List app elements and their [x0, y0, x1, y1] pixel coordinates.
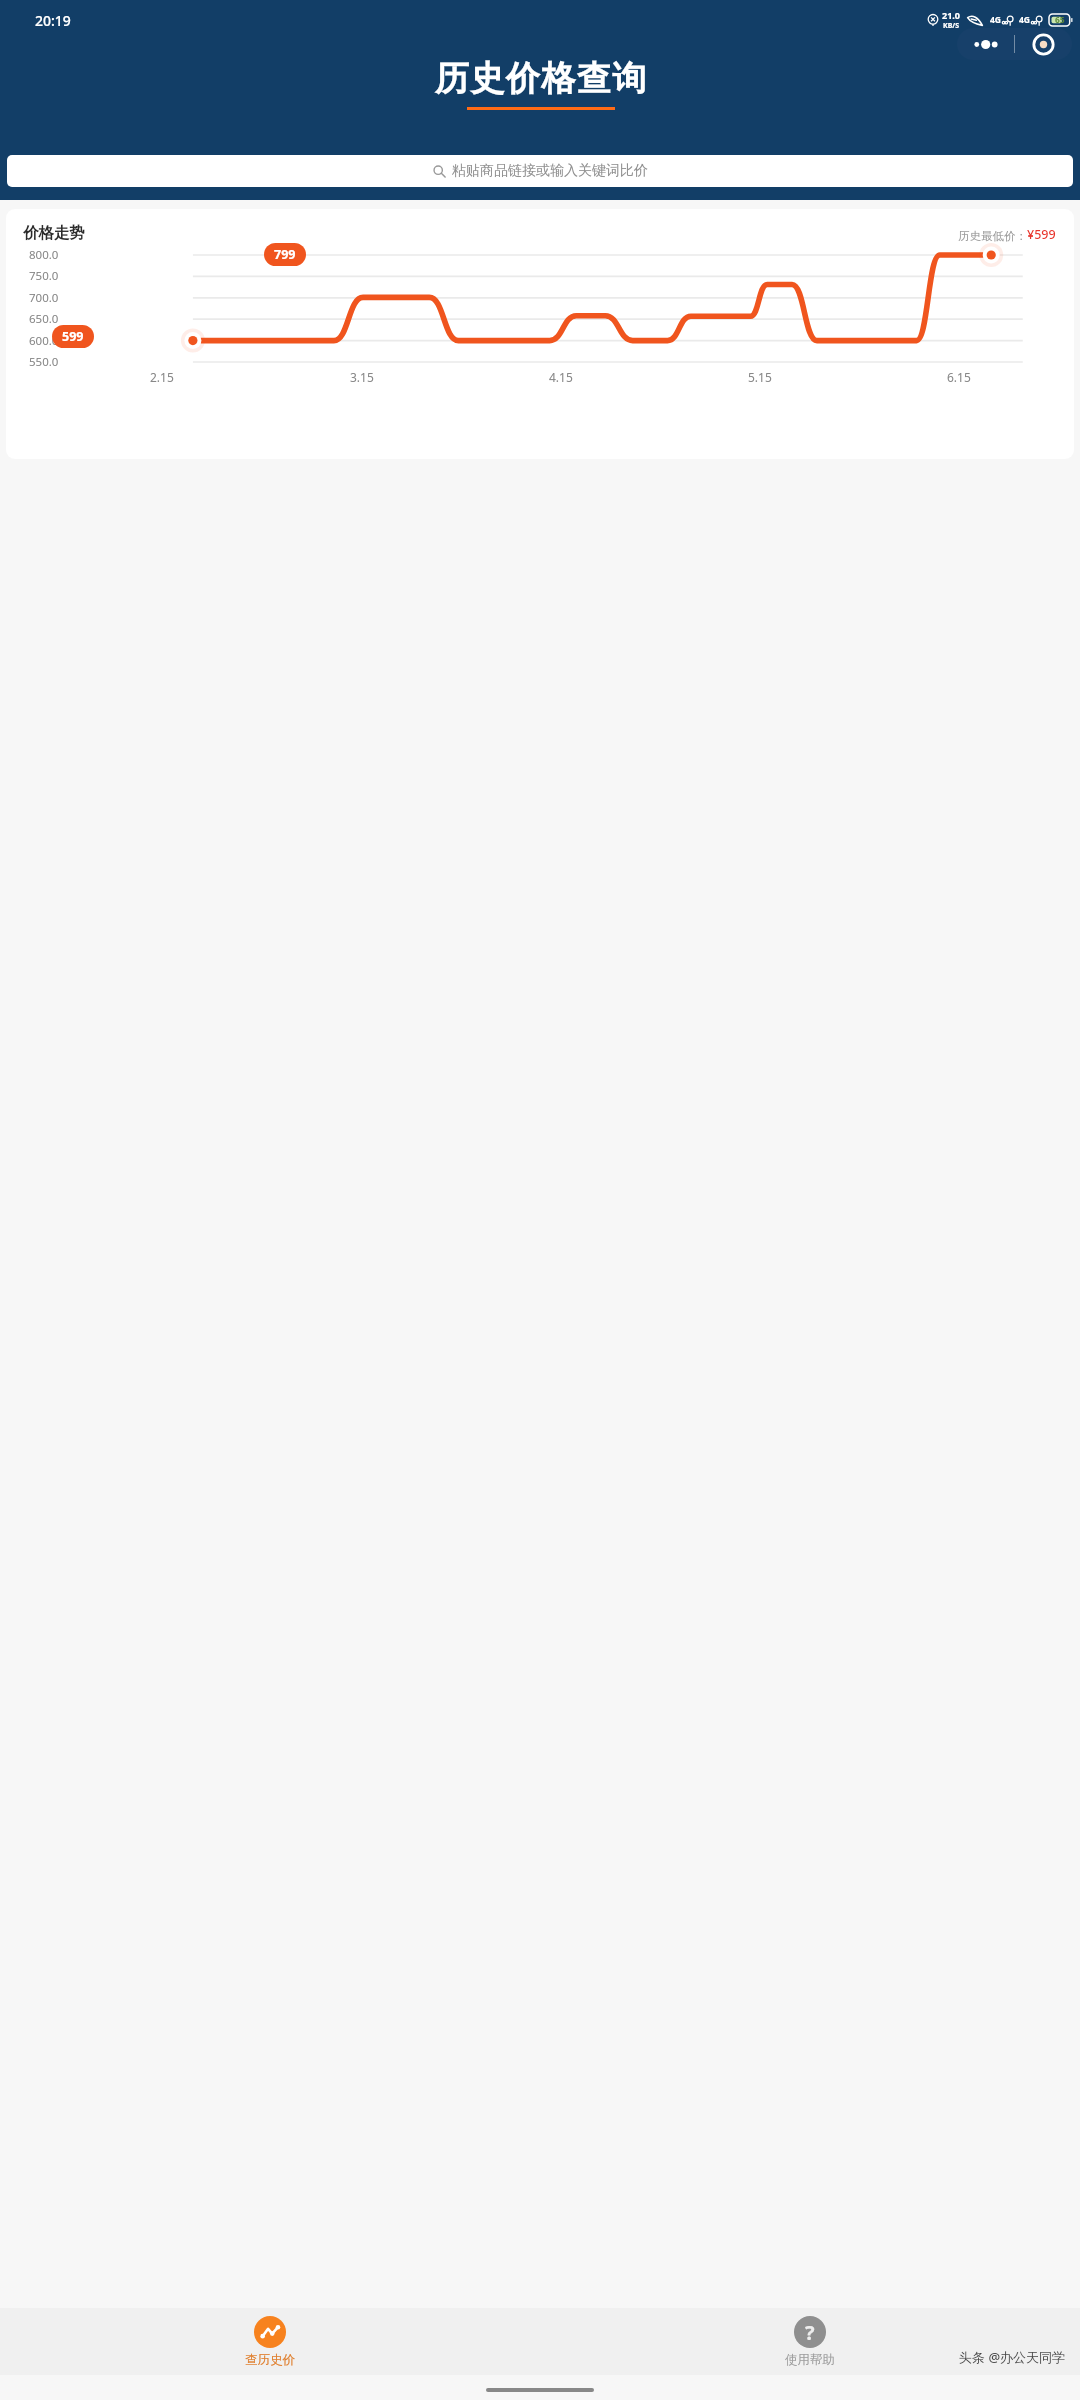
staticText: KB/S — [943, 21, 960, 31]
button[interactable]: 粘贴商品链接或输入关键词比价 — [7, 155, 1073, 187]
staticText: 4G — [990, 14, 1002, 26]
staticText: 800.0 — [29, 247, 59, 263]
button[interactable]: Close mini program — [1015, 28, 1072, 60]
staticText: 6.15 — [947, 369, 971, 385]
staticText: 599 — [62, 328, 84, 345]
staticText: 历史最低价： — [958, 229, 1027, 243]
staticText: 查历史价 — [245, 2352, 295, 2368]
button[interactable]: 查历史价 — [0, 2308, 540, 2375]
button[interactable]: More options — [957, 28, 1014, 60]
staticText: 4G — [1019, 14, 1031, 26]
staticText: 21.0 — [942, 9, 960, 21]
staticText: 3.15 — [350, 369, 374, 385]
button[interactable]: ? — [540, 2308, 1080, 2375]
staticText: 65 — [1055, 14, 1065, 26]
staticText: 5.15 — [748, 369, 772, 385]
staticText: 使用帮助 — [785, 2352, 835, 2368]
staticText: 750.0 — [29, 268, 59, 284]
staticText: 650.0 — [29, 311, 59, 327]
staticText: 粘贴商品链接或输入关键词比价 — [452, 162, 648, 180]
staticText: 4.15 — [549, 369, 573, 385]
staticText: 2.15 — [150, 369, 174, 385]
staticText: 700.0 — [29, 290, 59, 306]
staticText: 600.0 — [29, 333, 59, 349]
staticText: 价格走势 — [23, 223, 85, 243]
staticText: ? — [805, 2319, 815, 2346]
staticText: 头条 @办公天同学 — [959, 2348, 1066, 2366]
staticText: ¥599 — [1027, 226, 1056, 243]
staticText: 550.0 — [29, 354, 59, 370]
staticText: 历史价格查询 — [434, 57, 647, 100]
staticText: 799 — [274, 246, 296, 263]
staticText: 20:19 — [35, 11, 71, 30]
